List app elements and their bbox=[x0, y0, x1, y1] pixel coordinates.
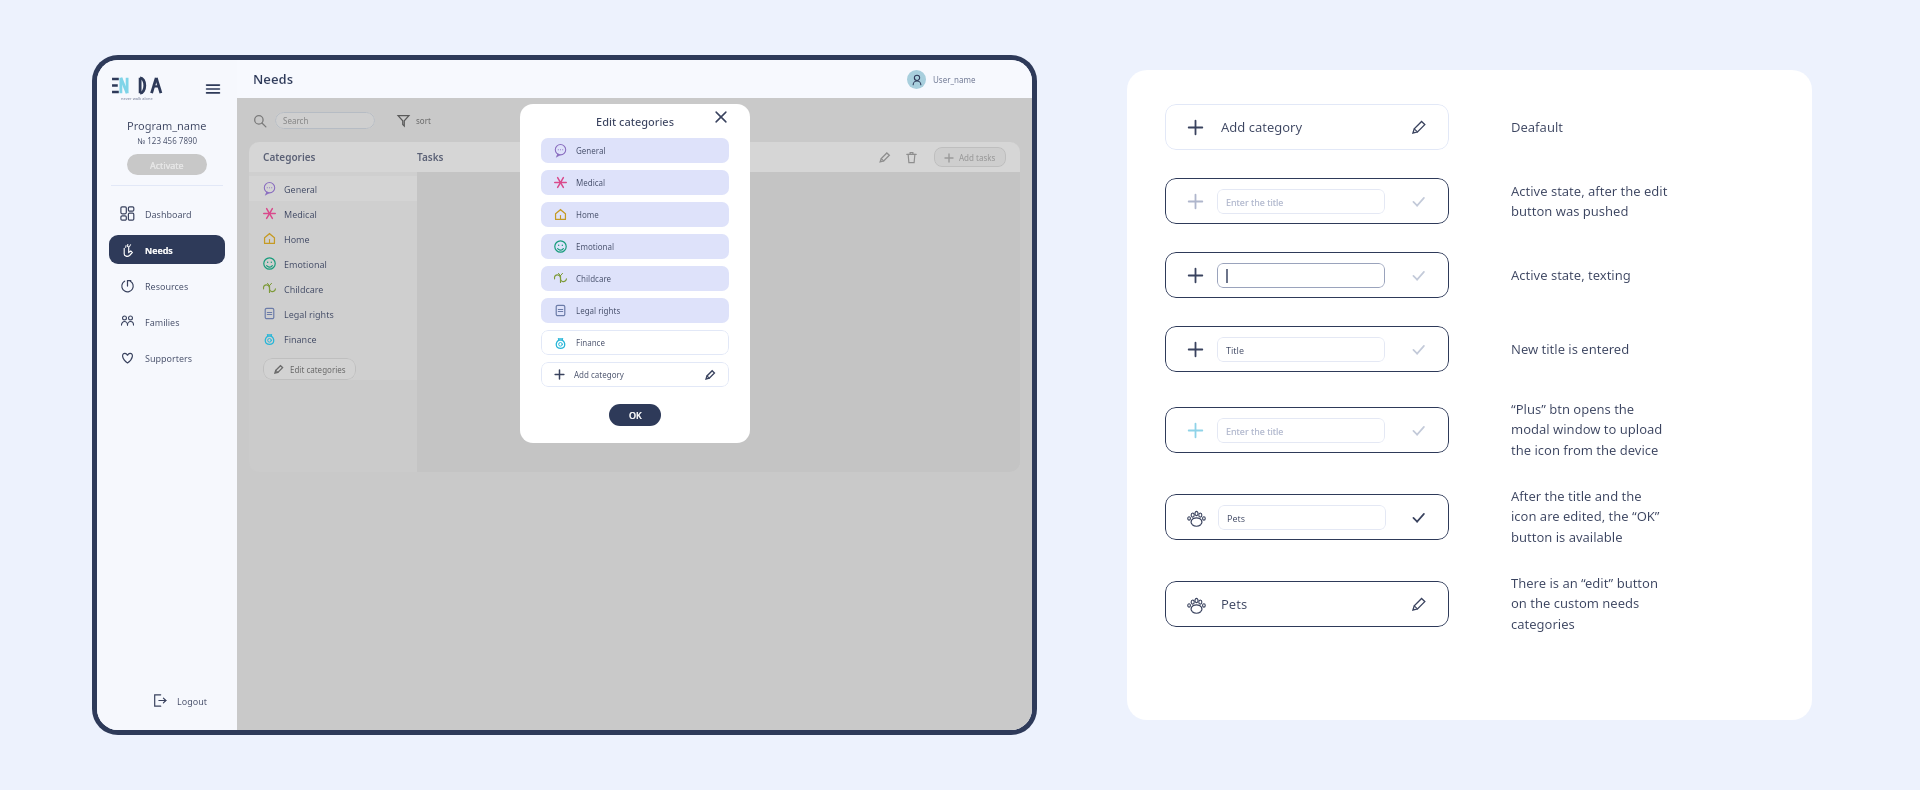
button[interactable]: Enter the title bbox=[1165, 178, 1449, 224]
staticText: There is an “edit” button on the custom … bbox=[1511, 574, 1781, 633]
staticText: Emotional bbox=[576, 241, 615, 252]
button[interactable]: User_name bbox=[907, 70, 976, 89]
button[interactable]: Legal rights bbox=[541, 298, 729, 323]
button[interactable]: Title bbox=[1165, 326, 1449, 372]
staticText: Edit categories bbox=[596, 114, 675, 129]
button[interactable]: Resources bbox=[109, 271, 225, 300]
staticText: Add tasks bbox=[959, 152, 996, 163]
button[interactable]: Add category bbox=[541, 362, 729, 387]
button[interactable]: Childcare bbox=[249, 276, 417, 301]
button[interactable]: Home bbox=[541, 202, 729, 227]
staticText: Medical bbox=[576, 177, 606, 188]
button[interactable]: Medical bbox=[541, 170, 729, 195]
staticText: Add category bbox=[574, 369, 624, 380]
button[interactable]: Families bbox=[109, 307, 225, 336]
button[interactable]: Logout bbox=[152, 693, 207, 708]
button[interactable]: Home bbox=[249, 226, 417, 251]
button[interactable]: OK bbox=[609, 404, 661, 426]
button[interactable]: Edit categories bbox=[263, 358, 356, 380]
staticText: Logout bbox=[177, 695, 207, 707]
staticText: OK bbox=[629, 409, 642, 421]
button[interactable]: Close bbox=[713, 109, 729, 125]
staticText: Medical bbox=[284, 208, 317, 220]
button[interactable]: Finance bbox=[541, 330, 729, 355]
button[interactable]: Activate bbox=[127, 154, 207, 175]
staticText: New title is entered bbox=[1511, 340, 1781, 358]
button[interactable]: Pets bbox=[1165, 581, 1449, 627]
staticText: Tasks bbox=[417, 150, 444, 164]
staticText: sort bbox=[416, 115, 431, 126]
staticText: Legal rights bbox=[284, 308, 334, 320]
button[interactable]: Supporters bbox=[109, 343, 225, 372]
button[interactable]: Title bbox=[1217, 337, 1385, 362]
button[interactable]: sort bbox=[397, 114, 431, 127]
button[interactable]: Add tasks bbox=[934, 147, 1006, 167]
staticText: Enter the title bbox=[1226, 196, 1284, 208]
button[interactable]: Finance bbox=[249, 326, 417, 351]
staticText: Finance bbox=[576, 337, 605, 348]
button[interactable]: Legal rights bbox=[249, 301, 417, 326]
staticText: Pets bbox=[1227, 512, 1246, 524]
staticText: After the title and the icon are edited,… bbox=[1511, 487, 1781, 546]
staticText: Families bbox=[145, 316, 180, 328]
button[interactable]: Emotional bbox=[541, 234, 729, 259]
staticText: Active state, after the edit button was … bbox=[1511, 182, 1781, 220]
staticText: Resources bbox=[145, 280, 189, 292]
staticText: Enter the title bbox=[1226, 425, 1284, 437]
staticText: Add category bbox=[1221, 118, 1303, 136]
staticText: General bbox=[576, 145, 606, 156]
button[interactable]: General bbox=[541, 138, 729, 163]
button[interactable]: Menu bbox=[203, 79, 223, 99]
staticText: Edit categories bbox=[290, 364, 346, 375]
staticText: Emotional bbox=[284, 258, 327, 270]
button[interactable] bbox=[1217, 263, 1385, 288]
staticText: № 123 456 7890 bbox=[137, 135, 198, 146]
staticText: Deafault bbox=[1511, 118, 1781, 136]
staticText: Active state, texting bbox=[1511, 266, 1781, 284]
staticText: Title bbox=[1226, 344, 1244, 356]
button[interactable]: Enter the title bbox=[1217, 418, 1385, 443]
button[interactable]: General bbox=[249, 176, 417, 201]
staticText: Home bbox=[576, 209, 599, 220]
button[interactable]: Enter the title bbox=[1165, 407, 1449, 453]
staticText: “Plus” btn opens the modal window to upl… bbox=[1511, 400, 1781, 459]
button[interactable]: Needs bbox=[109, 235, 225, 264]
staticText: Finance bbox=[284, 333, 317, 345]
button[interactable]: Search bbox=[275, 112, 375, 129]
button[interactable]: Pets bbox=[1218, 505, 1386, 530]
staticText: Home bbox=[284, 233, 310, 245]
staticText: Needs bbox=[253, 70, 294, 88]
staticText: never walk alone bbox=[121, 96, 153, 101]
staticText: Pets bbox=[1221, 595, 1248, 613]
button[interactable]: Enter the title bbox=[1217, 189, 1385, 214]
staticText: Childcare bbox=[284, 283, 324, 295]
staticText: Legal rights bbox=[576, 305, 621, 316]
staticText: General bbox=[284, 183, 318, 195]
staticText: Needs bbox=[145, 244, 173, 256]
staticText: Dashboard bbox=[145, 208, 192, 220]
staticText: Program_name bbox=[127, 118, 207, 133]
button[interactable]: Pets bbox=[1165, 494, 1449, 540]
button[interactable]: Medical bbox=[249, 201, 417, 226]
staticText: Search bbox=[283, 115, 309, 126]
staticText: Childcare bbox=[576, 273, 612, 284]
button[interactable]: Childcare bbox=[541, 266, 729, 291]
button[interactable]: Emotional bbox=[249, 251, 417, 276]
staticText: Activate bbox=[150, 159, 184, 171]
staticText: Categories bbox=[263, 150, 316, 164]
button[interactable]: Add category bbox=[1165, 104, 1449, 150]
staticText: User_name bbox=[933, 74, 976, 85]
button[interactable] bbox=[1165, 252, 1449, 298]
button[interactable]: Dashboard bbox=[109, 199, 225, 228]
staticText: Supporters bbox=[145, 352, 193, 364]
